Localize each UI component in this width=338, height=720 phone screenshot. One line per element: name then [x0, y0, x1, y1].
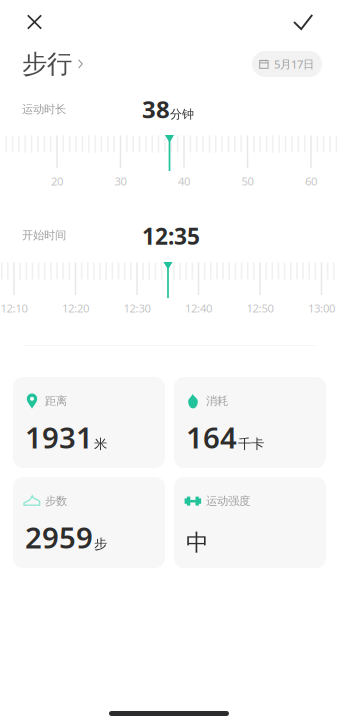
staticText: 5月17日 — [274, 56, 314, 72]
staticText: 20 — [51, 173, 63, 189]
button[interactable]: 步数 — [13, 477, 165, 568]
staticText: 40 — [178, 173, 190, 189]
staticText: 开始时间 — [22, 228, 66, 242]
staticText: 2959 — [25, 517, 93, 557]
staticText: 12:10 — [0, 300, 27, 316]
staticText: 运动时长 — [22, 102, 66, 116]
staticText: 消耗 — [206, 394, 228, 408]
button[interactable]: Confirm — [285, 7, 325, 45]
staticText: 12:35 — [142, 221, 200, 251]
staticText: 步行 — [22, 48, 72, 80]
staticText: 12:30 — [123, 300, 150, 316]
button[interactable]: 5月17日 — [252, 51, 322, 77]
staticText: 12:40 — [185, 300, 212, 316]
button[interactable]: 消耗 — [174, 377, 326, 468]
staticText: 50 — [241, 173, 253, 189]
staticText: 60 — [305, 173, 317, 189]
staticText: 运动强度 — [206, 494, 250, 508]
staticText: 13:00 — [308, 300, 335, 316]
button[interactable]: 步行 — [22, 43, 84, 85]
staticText: 距离 — [45, 394, 67, 408]
staticText: 30 — [114, 173, 126, 189]
staticText: 分钟 — [170, 107, 194, 122]
staticText: 步数 — [45, 494, 67, 508]
button[interactable]: 运动强度 — [174, 477, 326, 568]
staticText: 12:20 — [62, 300, 89, 316]
staticText: 164 — [186, 417, 237, 457]
staticText: 步 — [94, 536, 107, 552]
button[interactable]: 距离 — [13, 377, 165, 468]
staticText: 千卡 — [238, 436, 264, 452]
staticText: 中 — [186, 528, 209, 557]
staticText: 米 — [94, 436, 107, 452]
staticText: 38 — [142, 93, 170, 125]
staticText: 1931 — [25, 417, 93, 457]
button[interactable]: Close — [14, 6, 54, 44]
staticText: 12:50 — [246, 300, 273, 316]
